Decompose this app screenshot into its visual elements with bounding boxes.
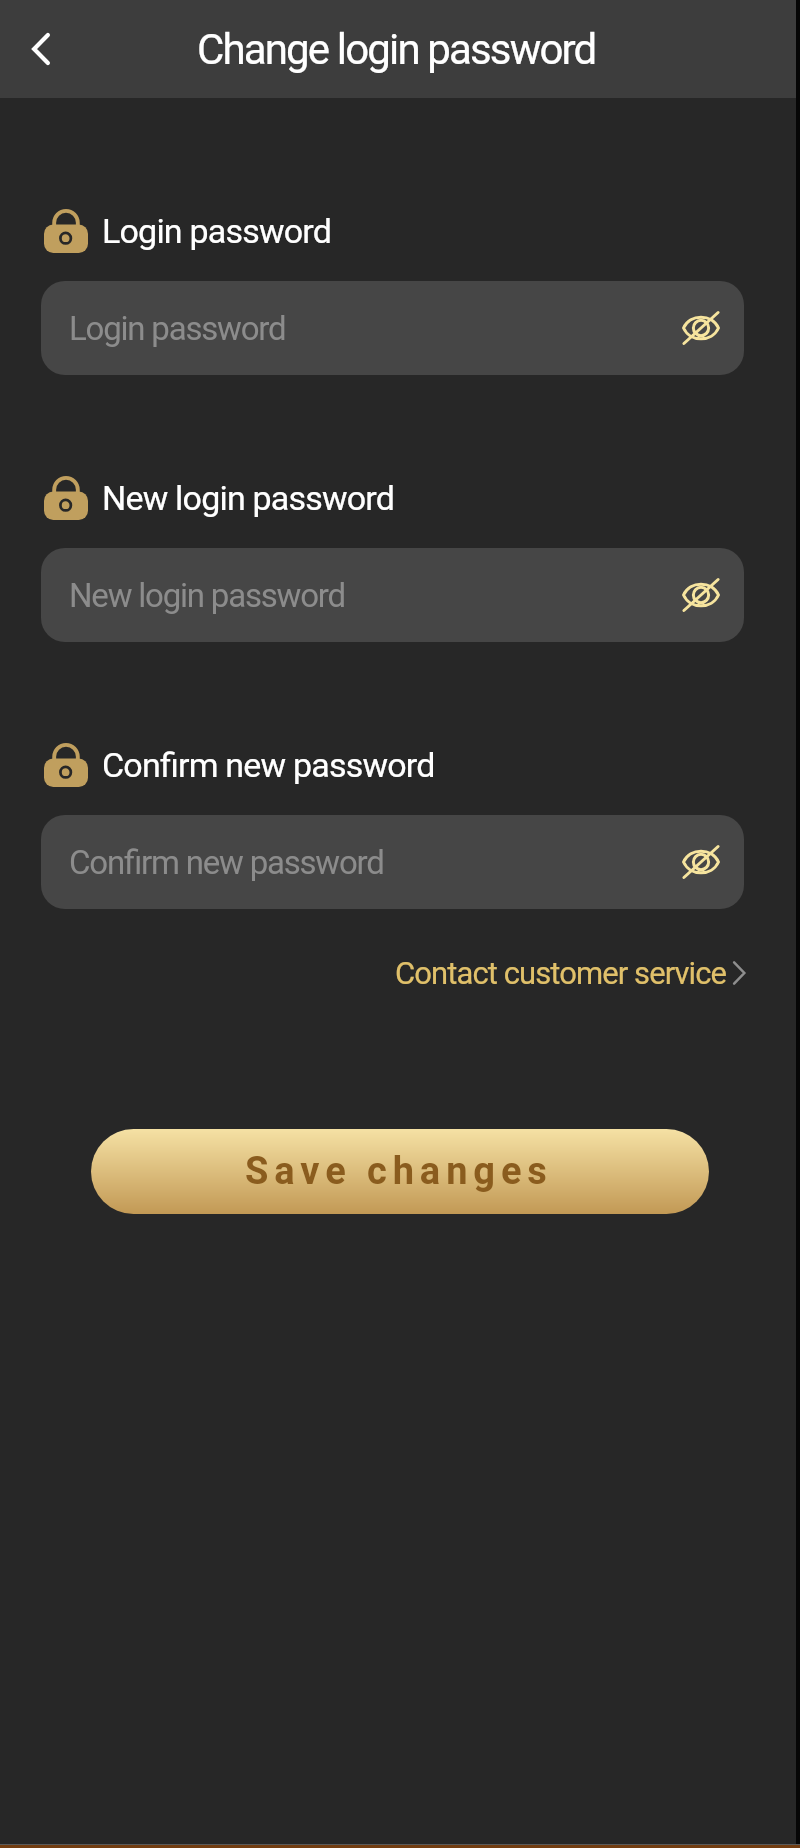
button[interactable]: Confirm new password <box>41 815 744 909</box>
staticText: New login password <box>102 478 395 518</box>
button[interactable]: Back <box>0 0 80 98</box>
staticText: Login password <box>69 309 286 348</box>
staticText: Contact customer service <box>395 955 727 991</box>
staticText: New login password <box>69 576 345 615</box>
staticText: Confirm new password <box>102 745 435 785</box>
staticText: Confirm new password <box>69 843 384 882</box>
button[interactable]: Contact customer service <box>395 947 746 999</box>
button[interactable]: Toggle password visibility <box>670 564 732 626</box>
staticText: Change login password <box>197 25 596 74</box>
button[interactable]: Toggle password visibility <box>670 831 732 893</box>
button[interactable]: Login password <box>41 281 744 375</box>
button[interactable]: Save changes <box>91 1129 709 1214</box>
button[interactable]: New login password <box>41 548 744 642</box>
staticText: Login password <box>102 211 332 251</box>
button[interactable]: Toggle password visibility <box>670 297 732 359</box>
staticText: Save changes <box>245 1149 553 1194</box>
